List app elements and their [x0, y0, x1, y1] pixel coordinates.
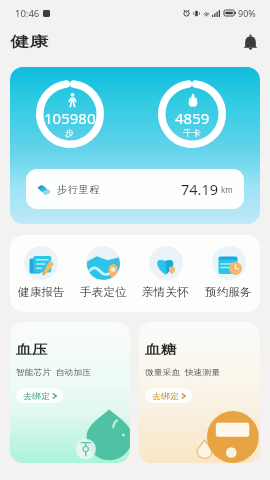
staticText: 智能芯片 自动加压 [16, 366, 92, 377]
button[interactable]: 去绑定 [145, 388, 192, 403]
button[interactable]: 手表定位 [72, 235, 134, 312]
staticText: 手表定位 [80, 285, 127, 299]
button[interactable]: 血糖 [139, 322, 260, 463]
staticText: 千卡 [183, 128, 202, 139]
staticText: 步 [65, 128, 75, 139]
button[interactable]: 步行里程 [26, 169, 244, 209]
staticText: 预约服务 [205, 285, 252, 299]
staticText: 90% [238, 7, 256, 19]
button[interactable]: 亲情关怀 [134, 235, 197, 312]
staticText: km [221, 184, 233, 195]
button[interactable]: 健康报告 [10, 235, 72, 312]
staticText: 血压 [16, 341, 48, 357]
staticText: 4859 [175, 108, 210, 128]
button[interactable]: 去绑定 [16, 388, 63, 403]
staticText: 去绑定 [23, 391, 50, 401]
staticText: 血糖 [145, 341, 177, 357]
staticText: 健康 [10, 33, 48, 50]
staticText: 74.19 [181, 179, 219, 199]
button[interactable]: Notifications [241, 33, 260, 52]
staticText: 微量采血 快速测量 [145, 366, 221, 377]
staticText: 步行里程 [57, 183, 101, 196]
button[interactable]: 血压 [10, 322, 130, 463]
staticText: 10:46 [15, 7, 40, 20]
staticText: 健康报告 [18, 285, 65, 299]
staticText: 亲情关怀 [142, 285, 189, 299]
button[interactable]: 预约服务 [197, 235, 260, 312]
staticText: 105980 [44, 108, 96, 128]
staticText: 去绑定 [152, 391, 179, 401]
